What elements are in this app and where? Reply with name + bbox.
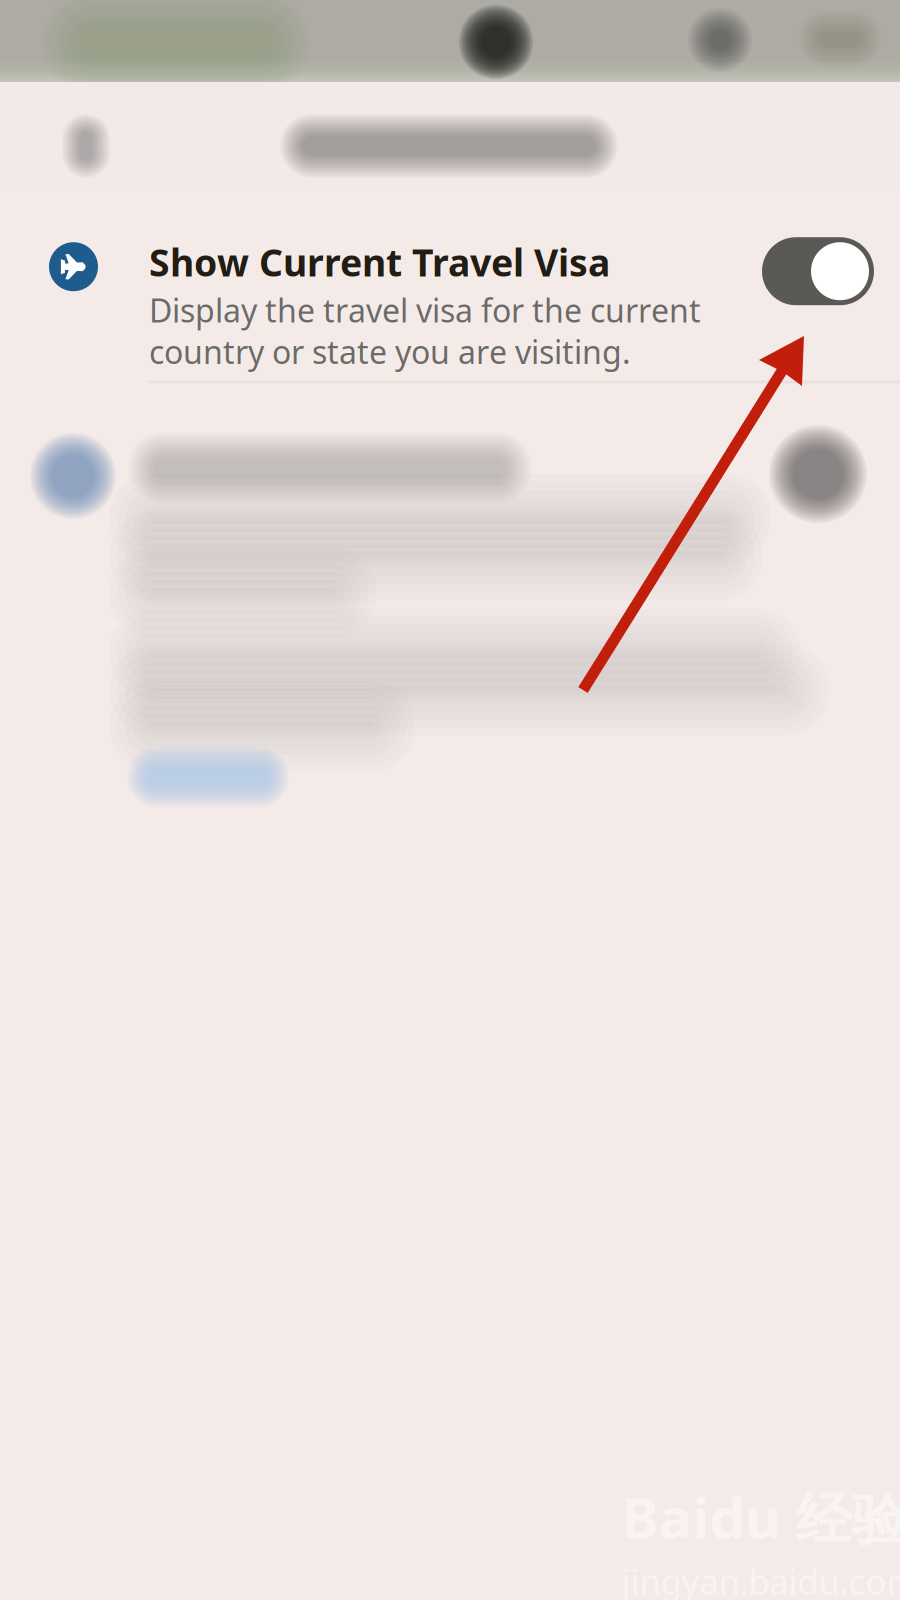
button[interactable]: Show Current Travel Visa [0, 232, 900, 378]
staticText: Show Current Travel Visa [149, 237, 610, 287]
staticText: Display the travel visa for the current [149, 289, 701, 331]
staticText: jingyan.baidu.com [621, 1558, 900, 1600]
staticText: Baidu 经验 [621, 1480, 900, 1554]
staticText: country or state you are visiting. [149, 330, 631, 373]
